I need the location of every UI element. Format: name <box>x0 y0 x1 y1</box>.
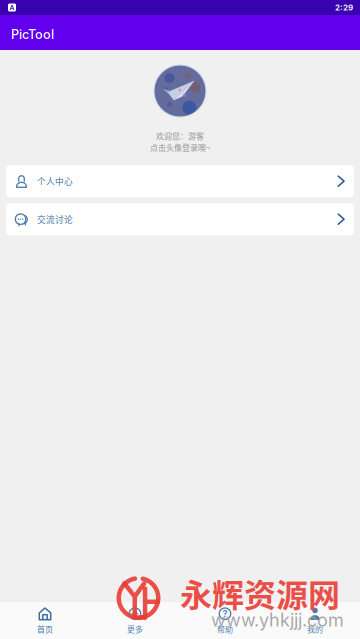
staticText: 个人中心 <box>37 175 73 187</box>
button[interactable]: 交流讨论 <box>6 203 354 235</box>
staticText: 首页 <box>37 623 53 635</box>
staticText: 帮助 <box>217 623 233 635</box>
staticText: 更多 <box>127 623 143 635</box>
staticText: 我的 <box>307 623 323 635</box>
staticText: www.yhkjjj.com <box>211 609 344 631</box>
staticText: A <box>9 3 14 12</box>
button[interactable]: 更多 <box>90 602 180 639</box>
staticText: ? <box>222 608 227 619</box>
staticText: 欢迎您：游客 <box>156 130 204 142</box>
button[interactable]: Avatar, tap to log in <box>154 65 206 117</box>
button[interactable]: 首页 <box>0 602 90 639</box>
staticText: PicTool <box>11 27 54 42</box>
staticText: 2:29 <box>335 3 353 12</box>
staticText: 交流讨论 <box>37 213 73 225</box>
staticText: 永辉资源网 <box>180 570 340 616</box>
button[interactable]: 我的 <box>270 602 360 639</box>
button[interactable]: 个人中心 <box>6 165 354 197</box>
staticText: 点击头像登录噢~ <box>150 142 210 153</box>
button[interactable]: ? <box>180 602 270 639</box>
